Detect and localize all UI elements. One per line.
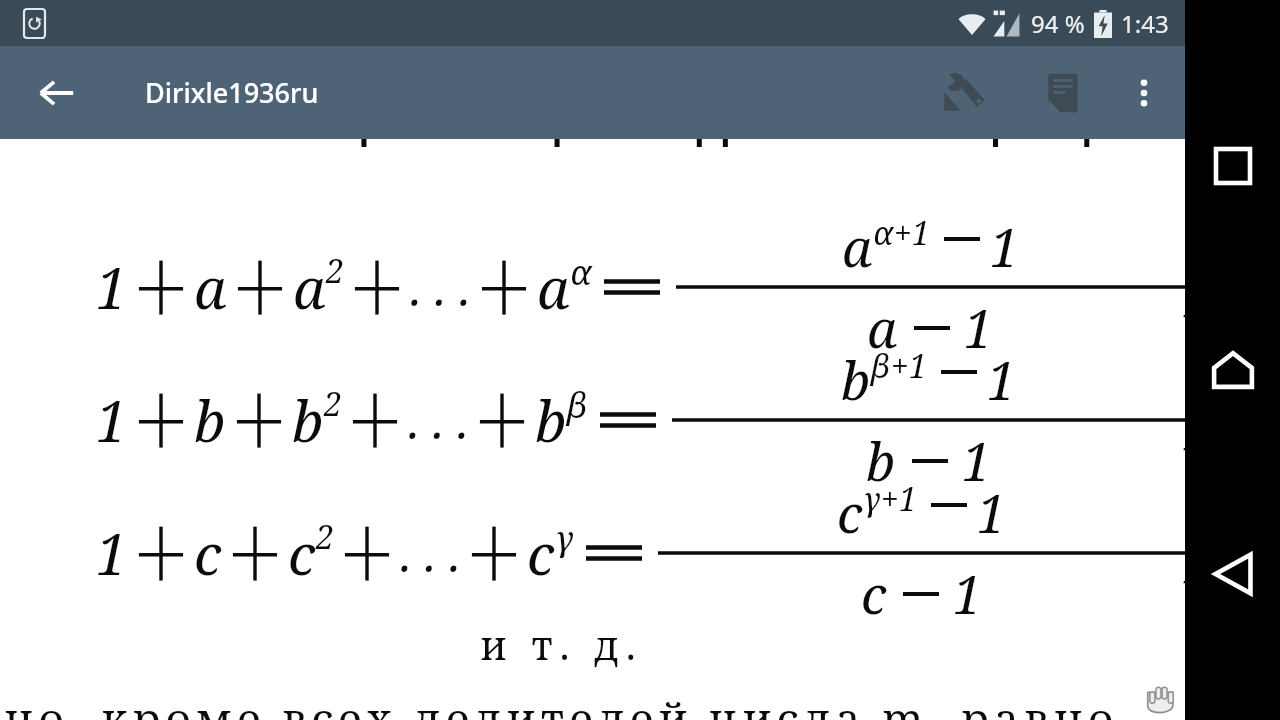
staticText: 2 (326, 249, 344, 293)
staticText: и т. д. (480, 617, 643, 671)
staticText: Dirixle1936ru (145, 74, 319, 111)
staticText: a (293, 249, 326, 325)
staticText: b (535, 382, 567, 458)
staticText: a (194, 249, 227, 325)
staticText: . . . (410, 255, 471, 320)
staticText: 1 (990, 211, 1020, 282)
button[interactable]: Tools (931, 60, 997, 126)
staticText: α (873, 211, 894, 255)
staticText: +1 (894, 211, 930, 255)
staticText: 1 (96, 382, 128, 458)
staticText: b (194, 382, 226, 458)
staticText: 1:43 (1121, 7, 1169, 40)
staticText: b (292, 382, 324, 458)
staticText: 1 (96, 249, 128, 325)
staticText: β (871, 344, 891, 388)
staticText: +1 (881, 477, 917, 521)
staticText: 1 (96, 515, 128, 591)
staticText: . . . (408, 388, 469, 453)
button[interactable]: Recents (1192, 125, 1274, 207)
staticText: 94 % (1031, 7, 1085, 40)
staticText: b (866, 425, 896, 496)
button[interactable]: Back (28, 64, 86, 122)
staticText: 1 (964, 292, 994, 363)
staticText: c (194, 515, 222, 591)
staticText: a (537, 249, 570, 325)
button[interactable]: Home (1192, 329, 1274, 411)
staticText: a (867, 292, 898, 363)
staticText: α (570, 249, 592, 295)
staticText: 2 (324, 382, 342, 426)
staticText: γ (555, 515, 574, 561)
staticText: c (837, 477, 863, 548)
staticText: b (841, 344, 871, 415)
button[interactable]: More options (1115, 64, 1173, 122)
staticText: но, кроме всех делителей числа m, равно (4, 688, 1119, 720)
button[interactable]: Document view (1029, 60, 1095, 126)
staticText: c (861, 558, 887, 629)
staticText: γ (863, 477, 881, 521)
button[interactable]: Back (1192, 533, 1274, 615)
staticText: c (527, 515, 555, 591)
staticText: 1 (953, 558, 983, 629)
staticText: a (842, 211, 873, 282)
staticText: 2 (316, 515, 334, 559)
staticText: 1 (987, 344, 1017, 415)
staticText: 1 (977, 477, 1007, 548)
staticText: 1 (962, 425, 992, 496)
staticText: . . . (400, 521, 461, 586)
staticText: β (567, 382, 588, 428)
staticText: c (288, 515, 316, 591)
staticText: +1 (891, 344, 927, 388)
